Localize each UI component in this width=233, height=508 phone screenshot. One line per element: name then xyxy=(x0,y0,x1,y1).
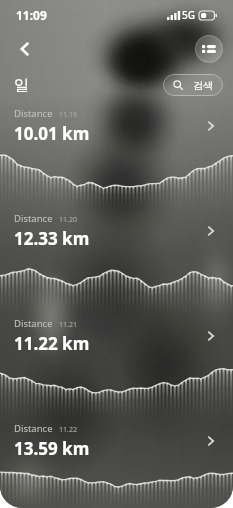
staticText: 12.33 km xyxy=(14,227,90,250)
button[interactable]: Distance xyxy=(0,417,233,465)
button[interactable]: 검색 xyxy=(163,74,223,96)
button[interactable]: Back xyxy=(10,34,40,64)
staticText: Distance xyxy=(14,317,53,330)
button[interactable]: Open 12.33 km details xyxy=(201,221,221,241)
staticText: Distance xyxy=(14,212,53,225)
staticText: 11.22 km xyxy=(14,332,90,355)
button[interactable]: Distance xyxy=(0,102,233,150)
button[interactable]: Open 11.22 km details xyxy=(201,326,221,346)
button[interactable]: Distance xyxy=(0,207,233,255)
button[interactable]: Menu xyxy=(195,35,223,63)
staticText: 검색 xyxy=(193,79,213,92)
staticText: 5G xyxy=(182,8,195,22)
staticText: 11.19 xyxy=(59,110,77,120)
staticText: 10.01 km xyxy=(14,122,90,145)
staticText: 11.21 xyxy=(59,320,77,330)
staticText: 11.22 xyxy=(59,425,77,435)
button[interactable]: Open 10.01 km details xyxy=(201,116,221,136)
button[interactable]: Distance xyxy=(0,312,233,360)
staticText: 일 xyxy=(14,76,29,95)
staticText: 11:09 xyxy=(16,7,47,23)
staticText: Distance xyxy=(14,422,53,435)
staticText: Distance xyxy=(14,107,53,120)
staticText: 13.59 km xyxy=(14,437,90,460)
button[interactable]: Open 13.59 km details xyxy=(201,431,221,451)
staticText: 11.20 xyxy=(59,215,77,225)
